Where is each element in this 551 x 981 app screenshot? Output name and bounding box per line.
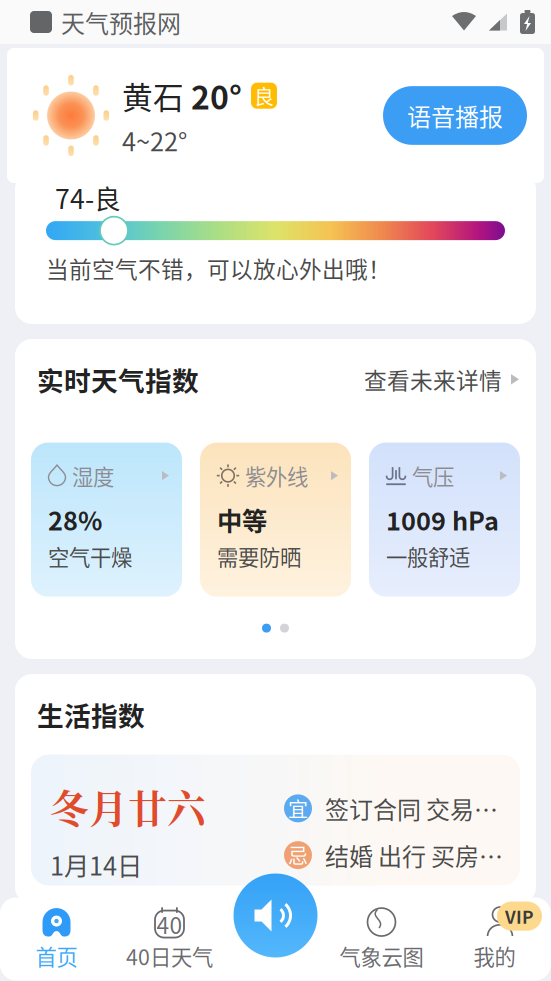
staticText: 紫外线: [245, 460, 308, 491]
button[interactable]: 查看未来详情: [364, 363, 519, 396]
button[interactable]: 语音播报: [383, 86, 527, 145]
staticText: 中等: [217, 501, 267, 538]
staticText: 首页: [35, 941, 77, 971]
staticText: 语音播报: [407, 98, 503, 133]
button[interactable]: 首页: [0, 897, 113, 980]
staticText: 一般舒适: [386, 541, 470, 572]
staticText: 40日天气: [126, 941, 213, 971]
button[interactable]: VIP: [438, 897, 551, 980]
staticText: 1月14日: [50, 846, 142, 883]
staticText: 天气预报网: [61, 5, 181, 39]
staticText: 冬月廿六: [50, 779, 206, 834]
staticText: 气压: [412, 460, 454, 491]
staticText: 结婚 出行 买房…: [325, 838, 503, 872]
staticText: 黄石: [122, 73, 184, 118]
staticText: 湿度: [72, 460, 114, 491]
staticText: 空气干燥: [48, 541, 132, 572]
staticText: 40: [156, 908, 182, 940]
staticText: 我的: [473, 941, 515, 971]
staticText: 需要防晒: [217, 541, 301, 572]
staticText: 宜: [288, 794, 308, 823]
staticText: 4~22°: [122, 122, 187, 158]
staticText: VIP: [505, 904, 534, 929]
staticText: 74-良: [55, 178, 121, 217]
staticText: 良: [254, 81, 274, 110]
staticText: 实时天气指数: [37, 360, 199, 399]
button[interactable]: 40: [113, 897, 226, 980]
staticText: 气象云图: [339, 941, 423, 971]
staticText: 生活指数: [37, 695, 145, 734]
staticText: 28%: [48, 501, 102, 538]
staticText: 签订合同 交易…: [325, 791, 498, 826]
button[interactable]: 语音播报: [233, 873, 317, 957]
button[interactable]: 气象云图: [325, 897, 438, 980]
staticText: 查看未来详情: [364, 363, 502, 396]
staticText: 当前空气不错，可以放心外出哦！: [46, 252, 391, 284]
staticText: 20°: [191, 72, 242, 119]
staticText: 1009 hPa: [386, 501, 499, 538]
staticText: 忌: [288, 841, 308, 870]
